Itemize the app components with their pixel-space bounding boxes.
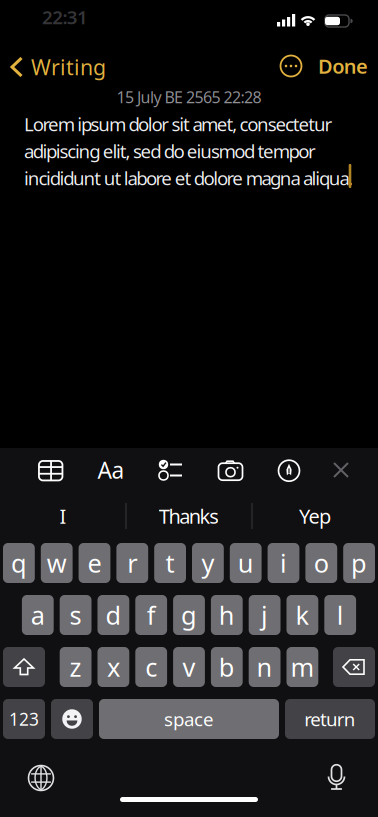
button[interactable]: v: [173, 647, 205, 687]
staticText: incididunt ut labore et dolore magna ali…: [24, 166, 353, 190]
button[interactable]: 123: [3, 699, 45, 739]
staticText: Writing: [31, 53, 106, 81]
staticText: s: [70, 598, 82, 632]
button[interactable]: s: [60, 595, 91, 635]
staticText: Yep: [299, 503, 331, 529]
button[interactable]: o: [305, 543, 337, 583]
button[interactable]: b: [211, 647, 243, 687]
button[interactable]: r: [116, 543, 148, 583]
button[interactable]: Markup: [269, 451, 309, 491]
button[interactable]: q: [3, 543, 35, 583]
staticText: a: [31, 598, 45, 632]
staticText: return: [304, 707, 356, 731]
staticText: space: [164, 707, 214, 731]
button[interactable]: w: [41, 543, 73, 583]
staticText: p: [351, 546, 367, 580]
button[interactable]: j: [249, 595, 280, 635]
button[interactable]: y: [192, 543, 224, 583]
staticText: z: [70, 650, 82, 684]
button[interactable]: space: [99, 699, 279, 739]
staticText: Lorem ipsum dolor sit amet, consectetur: [24, 112, 333, 136]
staticText: o: [314, 546, 329, 580]
staticText: 123: [9, 707, 39, 730]
button[interactable]: i: [268, 543, 299, 583]
button[interactable]: z: [60, 647, 91, 687]
staticText: 15 July BE 2565 22:28: [116, 86, 261, 108]
button[interactable]: m: [286, 647, 318, 687]
staticText: w: [47, 546, 67, 580]
staticText: I: [59, 503, 66, 529]
staticText: n: [257, 650, 273, 684]
staticText: u: [238, 546, 254, 580]
button[interactable]: g: [173, 595, 205, 635]
button[interactable]: Format: [91, 450, 131, 490]
staticText: r: [127, 546, 137, 580]
button[interactable]: return: [285, 699, 375, 739]
staticText: e: [87, 546, 101, 580]
staticText: Thanks: [159, 503, 219, 529]
staticText: d: [105, 598, 121, 632]
button[interactable]: Delete: [333, 647, 375, 687]
staticText: k: [295, 598, 309, 632]
button[interactable]: Next keyboard: [23, 760, 59, 796]
button[interactable]: k: [286, 595, 318, 635]
staticText: h: [219, 598, 235, 632]
staticText: c: [145, 650, 157, 684]
button[interactable]: p: [343, 543, 375, 583]
staticText: j: [261, 598, 268, 632]
staticText: l: [337, 598, 344, 632]
button[interactable]: Checklist: [150, 450, 190, 490]
button[interactable]: a: [22, 595, 54, 635]
staticText: t: [166, 546, 175, 580]
staticText: y: [201, 546, 214, 580]
staticText: Aa: [97, 455, 124, 485]
button[interactable]: Dismiss keyboard bar: [321, 450, 361, 490]
button[interactable]: Yep: [255, 497, 375, 535]
staticText: adipiscing elit, sed do eiusmod tempor: [24, 139, 316, 163]
staticText: q: [11, 546, 27, 580]
button[interactable]: Table: [31, 451, 71, 491]
button[interactable]: u: [230, 543, 262, 583]
staticText: b: [219, 650, 235, 684]
staticText: m: [290, 650, 314, 684]
button[interactable]: d: [97, 595, 129, 635]
button[interactable]: f: [135, 595, 167, 635]
button[interactable]: c: [135, 647, 167, 687]
staticText: g: [181, 598, 197, 632]
button[interactable]: e: [79, 543, 110, 583]
staticText: f: [147, 598, 156, 632]
button[interactable]: Camera: [210, 451, 250, 491]
button[interactable]: n: [249, 647, 280, 687]
button[interactable]: Dictate: [318, 762, 354, 796]
button[interactable]: I: [3, 497, 123, 535]
staticText: i: [280, 546, 287, 580]
button[interactable]: Shift: [3, 647, 45, 687]
button[interactable]: Done: [318, 51, 368, 81]
button[interactable]: Writing: [10, 52, 106, 82]
button[interactable]: More: [276, 51, 306, 81]
staticText: x: [107, 650, 120, 684]
button[interactable]: Emoji: [51, 699, 93, 739]
button[interactable]: h: [211, 595, 243, 635]
button[interactable]: Thanks: [129, 497, 249, 535]
button[interactable]: l: [324, 595, 356, 635]
staticText: v: [182, 650, 195, 684]
button[interactable]: x: [97, 647, 129, 687]
staticText: Done: [318, 53, 368, 79]
button[interactable]: t: [154, 543, 186, 583]
staticText: 22:31: [42, 5, 88, 29]
